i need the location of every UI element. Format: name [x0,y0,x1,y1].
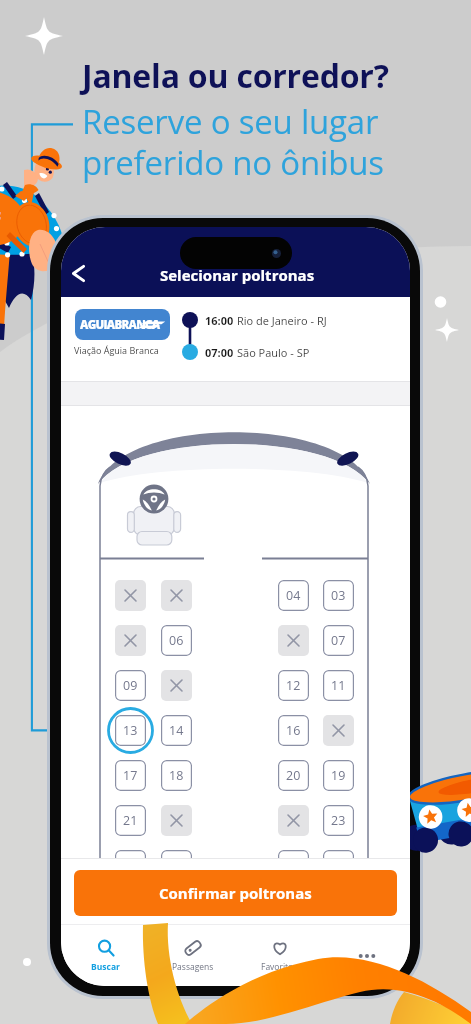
staticText: 18 [169,767,184,784]
staticText: Favoritos [261,961,298,973]
staticText: 07 [331,632,346,649]
staticText: 25 [123,857,138,874]
staticText: AGUIABRANCA [80,317,160,333]
staticText: 11 [331,677,346,694]
staticText: 21 [123,812,138,829]
staticText: 03 [331,587,346,604]
button[interactable]: 20 [278,760,309,791]
button[interactable]: 06 [161,625,192,656]
staticText: Reserve o seu lugar preferido no ônibus [82,99,384,185]
staticText: Viação Águia Branca [74,344,159,356]
button[interactable]: 23 [323,805,354,836]
staticText: 19 [331,767,346,784]
staticText: 23 [331,812,346,829]
button[interactable]: Confirmar poltronas [74,870,397,916]
staticText: Rio de Janeiro - RJ [237,313,327,328]
button[interactable]: 28 [278,850,309,881]
button[interactable]: 09 [115,670,146,701]
staticText: 04 [286,587,301,604]
staticText: 09 [123,677,138,694]
staticText: 13 [123,722,138,739]
staticText: Janela ou corredor? [82,54,389,98]
button[interactable]: 04 [278,580,309,611]
button[interactable]: 16 [278,715,309,746]
button[interactable]: 13 [115,715,146,746]
staticText: 12 [286,677,301,694]
staticText: 16:00 [205,313,237,328]
staticText: 26 [169,857,184,874]
staticText: 17 [123,767,138,784]
staticText: 14 [169,722,184,739]
staticText: 16 [286,722,301,739]
staticText: Confirmar poltronas [159,883,312,903]
staticText: 28 [286,857,301,874]
button[interactable]: 25 [115,850,146,881]
button[interactable]: 03 [323,580,354,611]
button[interactable]: 14 [161,715,192,746]
button[interactable]: 12 [278,670,309,701]
button[interactable]: 07 [323,625,354,656]
staticText: Selecionar poltronas [160,265,315,285]
staticText: 06 [169,632,184,649]
button[interactable]: Voltar [61,255,96,291]
button[interactable]: 18 [161,760,192,791]
button[interactable]: 11 [323,670,354,701]
staticText: 20 [286,767,301,784]
button[interactable]: Favoritos [236,925,323,986]
button[interactable]: 21 [115,805,146,836]
button[interactable]: Mais opções [323,925,410,986]
button[interactable]: 17 [115,760,146,791]
staticText: 07:00 [205,345,237,360]
button[interactable]: 26 [161,850,192,881]
staticText: Passagens [172,961,214,973]
button[interactable]: Buscar [61,925,149,986]
button[interactable]: Passagens [149,925,236,986]
staticText: Buscar [91,961,120,973]
button[interactable]: 19 [323,760,354,791]
button[interactable]: 27 [323,850,354,881]
staticText: São Paulo - SP [237,345,310,360]
staticText: 27 [331,857,346,874]
